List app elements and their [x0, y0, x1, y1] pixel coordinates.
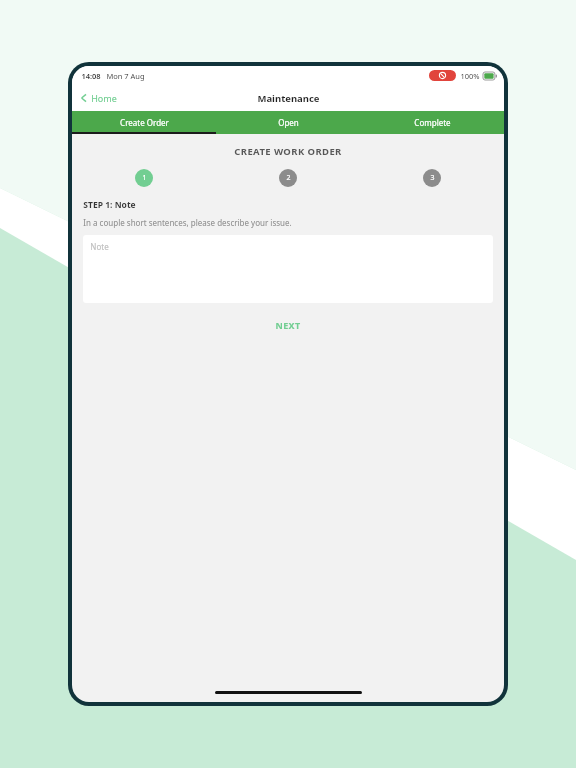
staticText: 3: [430, 173, 435, 183]
staticText: Note: [90, 241, 109, 252]
button[interactable]: 3: [423, 169, 441, 187]
staticText: Home: [91, 92, 117, 104]
staticText: Mon 7 Aug: [106, 71, 145, 81]
staticText: Create Order: [120, 117, 169, 128]
staticText: Open: [278, 117, 299, 128]
staticText: NEXT: [275, 319, 301, 331]
staticText: In a couple short sentences, please desc…: [83, 217, 292, 228]
button[interactable]: Create Order: [72, 111, 216, 134]
staticText: 2: [286, 173, 291, 183]
staticText: CREATE WORK ORDER: [234, 145, 342, 158]
button[interactable]: NEXT: [259, 314, 317, 336]
staticText: Maintenance: [257, 92, 320, 105]
staticText: 14:08: [81, 71, 101, 81]
staticText: STEP 1: Note: [83, 199, 136, 211]
button[interactable]: Home: [72, 88, 127, 108]
button[interactable]: Complete: [360, 111, 504, 134]
staticText: 1: [142, 173, 147, 183]
other: Screen recording: [429, 70, 456, 81]
button[interactable]: Open: [216, 111, 360, 134]
button[interactable]: 1: [135, 169, 153, 187]
staticText: 100%: [460, 71, 480, 81]
button[interactable]: 2: [279, 169, 297, 187]
staticText: Complete: [414, 117, 451, 128]
